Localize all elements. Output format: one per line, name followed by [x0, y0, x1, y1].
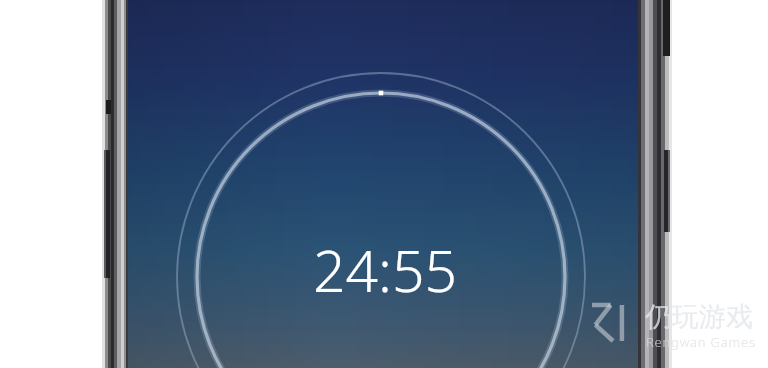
button[interactable]: Timer 24:55, tap to pause — [0, 0, 768, 368]
staticText: 24:55 — [313, 231, 458, 309]
staticText: 仍玩游戏 — [645, 300, 753, 334]
staticText: Rengwan Games — [646, 333, 756, 351]
